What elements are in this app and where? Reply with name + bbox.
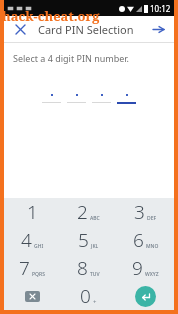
button[interactable] — [92, 94, 111, 103]
staticText: 8 — [77, 255, 88, 281]
button[interactable] — [67, 94, 86, 103]
staticText: 10:12 — [150, 3, 171, 14]
button[interactable]: 2 — [60, 198, 117, 226]
staticText: ABC — [90, 215, 100, 222]
staticText: JKL — [91, 243, 99, 250]
button[interactable]: Close — [10, 19, 30, 39]
staticText: 0 — [80, 283, 91, 309]
button[interactable]: 6 — [117, 226, 174, 254]
staticText: 5 — [78, 227, 89, 253]
button[interactable]: 9 — [117, 254, 174, 282]
staticText: PQRS — [32, 271, 45, 278]
staticText: Select a 4 digit PIN number. — [13, 52, 130, 64]
staticText: hack-cheat.org — [2, 7, 100, 25]
button[interactable] — [117, 94, 136, 104]
button[interactable]: Backspace — [4, 282, 60, 310]
button[interactable]: 5 — [60, 226, 117, 254]
button[interactable]: 4 — [4, 226, 60, 254]
staticText: 1 — [27, 199, 38, 225]
staticText: 9 — [132, 255, 143, 281]
staticText: TUV — [90, 271, 100, 278]
staticText: 4 — [21, 227, 32, 253]
staticText: Card PIN Selection — [38, 22, 134, 37]
button[interactable] — [42, 94, 61, 103]
staticText: + — [93, 298, 97, 306]
button[interactable]: Next — [148, 19, 168, 39]
staticText: GHI — [34, 243, 44, 250]
staticText: 3 — [134, 199, 145, 225]
staticText: WXYZ — [145, 271, 159, 278]
staticText: 2 — [77, 199, 88, 225]
staticText: 6 — [133, 227, 144, 253]
staticText: MNO — [146, 243, 159, 250]
button[interactable]: 1 — [4, 198, 60, 226]
button[interactable]: 8 — [60, 254, 117, 282]
staticText: DEF — [147, 215, 157, 222]
button[interactable]: 0 — [60, 282, 117, 310]
button[interactable]: Enter — [117, 282, 174, 310]
button[interactable]: 7 — [4, 254, 60, 282]
button[interactable]: 3 — [117, 198, 174, 226]
staticText: 7 — [19, 255, 30, 281]
